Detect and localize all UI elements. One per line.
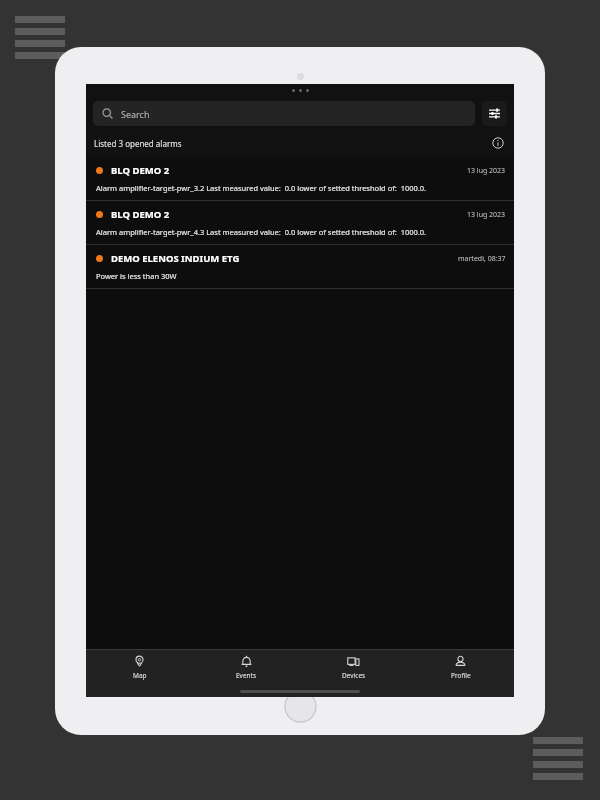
staticText: 13 lug 2023 — [467, 166, 506, 176]
button[interactable]: Devices — [300, 650, 407, 686]
staticText: Listed 3 opened alarms — [94, 138, 182, 149]
staticText: Search — [121, 108, 150, 120]
button[interactable]: Events — [193, 650, 300, 686]
button[interactable]: Map — [86, 650, 193, 686]
button[interactable]: Filter — [482, 101, 507, 126]
staticText: Power is less than 30W — [96, 271, 177, 281]
staticText: Profile — [451, 671, 471, 680]
staticText: Map — [133, 671, 147, 680]
staticText: 13 lug 2023 — [467, 210, 506, 220]
staticText: DEMO ELENOS INDIUM ETG — [111, 252, 240, 265]
staticText: martedì, 08:37 — [458, 254, 506, 264]
staticText: Events — [236, 671, 257, 680]
button[interactable]: BLQ DEMO 2 — [86, 201, 514, 244]
staticText: Alarm amplifier-target-pwr_4.3 Last meas… — [96, 227, 427, 237]
button[interactable]: BLQ DEMO 2 — [86, 157, 514, 200]
button[interactable]: Search — [93, 101, 475, 126]
staticText: BLQ DEMO 2 — [111, 208, 170, 221]
button[interactable]: Info — [490, 135, 506, 151]
button[interactable]: Profile — [407, 650, 514, 686]
staticText: BLQ DEMO 2 — [111, 164, 170, 177]
button[interactable]: DEMO ELENOS INDIUM ETG — [86, 245, 514, 288]
staticText: Alarm amplifier-target-pwr_3.2 Last meas… — [96, 183, 427, 193]
staticText: Devices — [342, 671, 366, 680]
